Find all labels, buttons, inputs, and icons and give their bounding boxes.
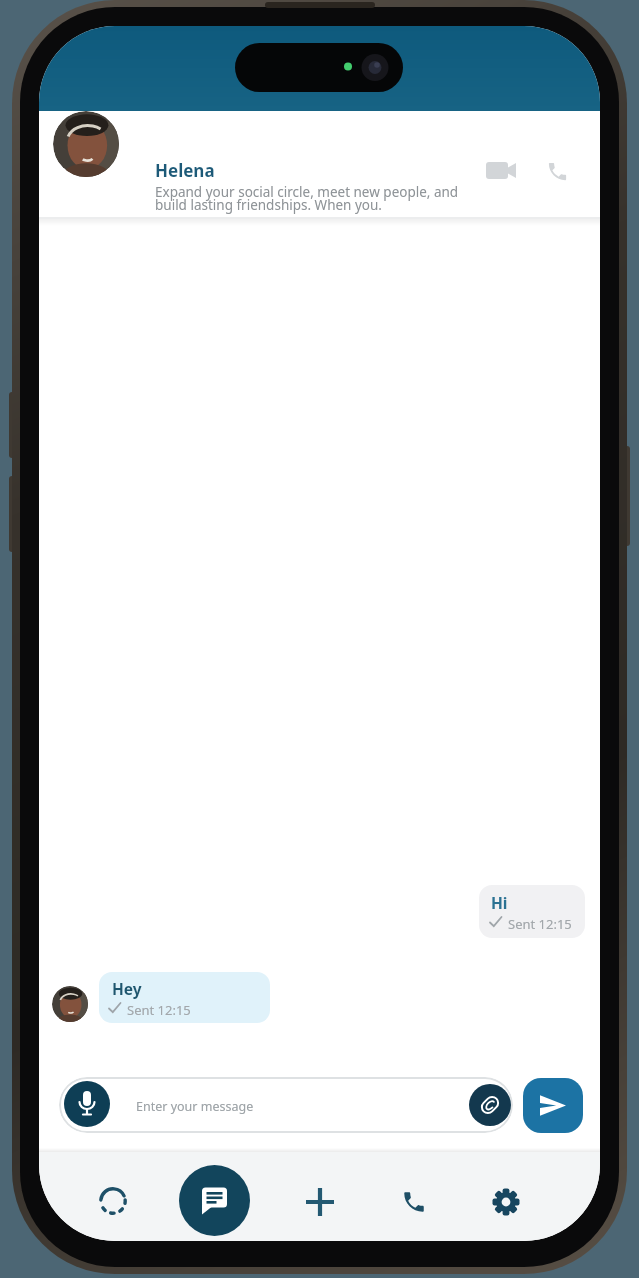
button[interactable] xyxy=(59,1077,513,1133)
button[interactable] xyxy=(305,1187,335,1217)
button[interactable] xyxy=(64,1081,110,1127)
button[interactable] xyxy=(539,154,575,188)
staticText: Expand your social circle, meet new peop… xyxy=(155,183,459,214)
staticText: Hey xyxy=(112,978,142,999)
button[interactable] xyxy=(53,111,119,177)
button[interactable] xyxy=(523,1078,583,1133)
button[interactable] xyxy=(96,1184,130,1218)
staticText: Sent 12:15 xyxy=(127,1001,191,1019)
staticText: Sent 12:15 xyxy=(508,915,572,933)
button[interactable] xyxy=(483,154,523,188)
staticText: Hi xyxy=(491,892,508,913)
button[interactable] xyxy=(492,1188,520,1216)
staticText: Enter your message xyxy=(136,1098,254,1115)
staticText: Helena xyxy=(155,159,215,182)
button[interactable] xyxy=(179,1165,250,1236)
button[interactable] xyxy=(401,1189,427,1215)
button[interactable] xyxy=(469,1084,511,1126)
